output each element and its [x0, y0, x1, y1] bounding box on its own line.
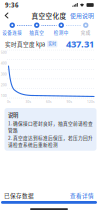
staticText: 9:36	[5, 1, 19, 9]
staticText: 使用说明	[70, 11, 94, 20]
staticText: 完成	[81, 29, 91, 35]
staticText: 30s	[25, 100, 31, 104]
staticText: 已保存数据	[4, 191, 34, 199]
staticText: 实时真空度 kpa	[5, 40, 45, 48]
staticText: 真空空化度	[31, 11, 66, 20]
staticText: 说明	[8, 111, 18, 119]
staticText: 2. 真空度达到标准后保压，若压力回升请检查系统后重新检测	[8, 134, 93, 148]
staticText: 抽真空	[29, 29, 44, 35]
button[interactable]: 返回	[0, 10, 12, 21]
staticText: 200	[1, 82, 7, 87]
button[interactable]: 查看详情	[70, 191, 94, 199]
staticText: 500	[1, 50, 7, 55]
staticText: 90s	[66, 100, 72, 104]
staticText: 检测中	[54, 29, 69, 35]
staticText: 0s	[7, 100, 11, 104]
staticText: 实时	[48, 41, 56, 47]
staticText: 1. 确保接口密封良好，抽真空前请检查管路	[8, 120, 93, 133]
staticText: 120s	[87, 100, 95, 104]
staticText: 400	[1, 61, 7, 66]
staticText: 设备连接	[2, 29, 22, 35]
staticText: 查看详情	[70, 191, 94, 199]
staticText: 437.31	[66, 38, 94, 50]
staticText: 100	[1, 93, 7, 98]
staticText: 60s	[46, 100, 52, 104]
staticText: 300	[1, 72, 7, 76]
button[interactable]	[0, 201, 98, 204]
button[interactable]: 使用说明	[70, 10, 98, 21]
